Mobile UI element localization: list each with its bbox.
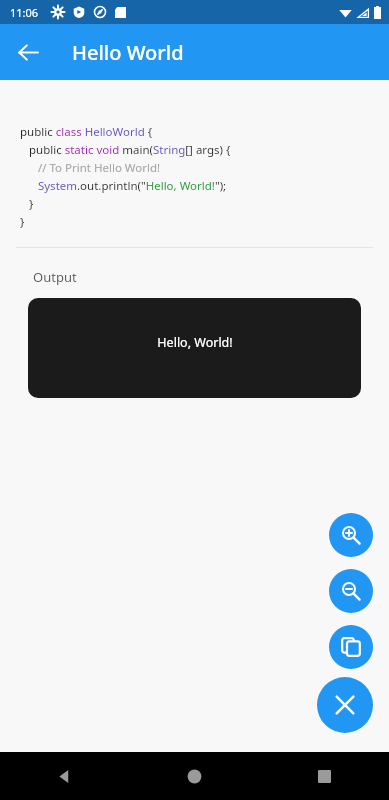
button[interactable]: Home (129, 752, 259, 800)
button[interactable]: Copy (329, 625, 373, 669)
button[interactable]: Recents (259, 752, 389, 800)
button[interactable]: Back (8, 32, 48, 72)
button[interactable]: Back (0, 752, 129, 800)
button[interactable]: Zoom in (329, 513, 373, 557)
staticText: Hello World (72, 39, 184, 66)
staticText: Hello, World! (157, 334, 233, 351)
button[interactable]: Zoom out (329, 569, 373, 613)
button[interactable]: Hello, World! (28, 298, 361, 398)
button[interactable]: Close (317, 677, 373, 733)
staticText: Output (33, 268, 77, 286)
staticText: 11:06 (10, 5, 39, 20)
staticText: public class HelloWorld { public static … (20, 124, 231, 229)
